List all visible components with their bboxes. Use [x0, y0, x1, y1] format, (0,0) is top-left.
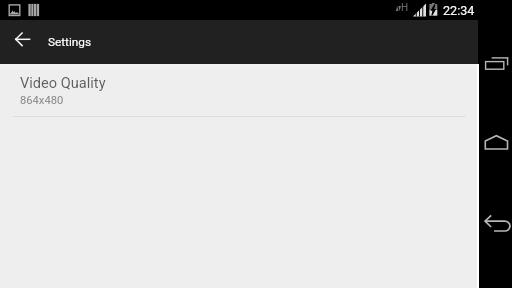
staticText: Video Quality [20, 74, 106, 91]
button[interactable]: Navigate up [8, 27, 38, 57]
button[interactable]: Home [479, 125, 512, 159]
button[interactable]: Recent apps [479, 48, 512, 82]
staticText: H [401, 2, 409, 14]
staticText: Settings [48, 35, 92, 49]
staticText: 864x480 [20, 94, 64, 107]
staticText: 22:34 [443, 3, 475, 18]
button[interactable]: Back [479, 205, 512, 239]
button[interactable]: Video Quality [0, 69, 478, 127]
